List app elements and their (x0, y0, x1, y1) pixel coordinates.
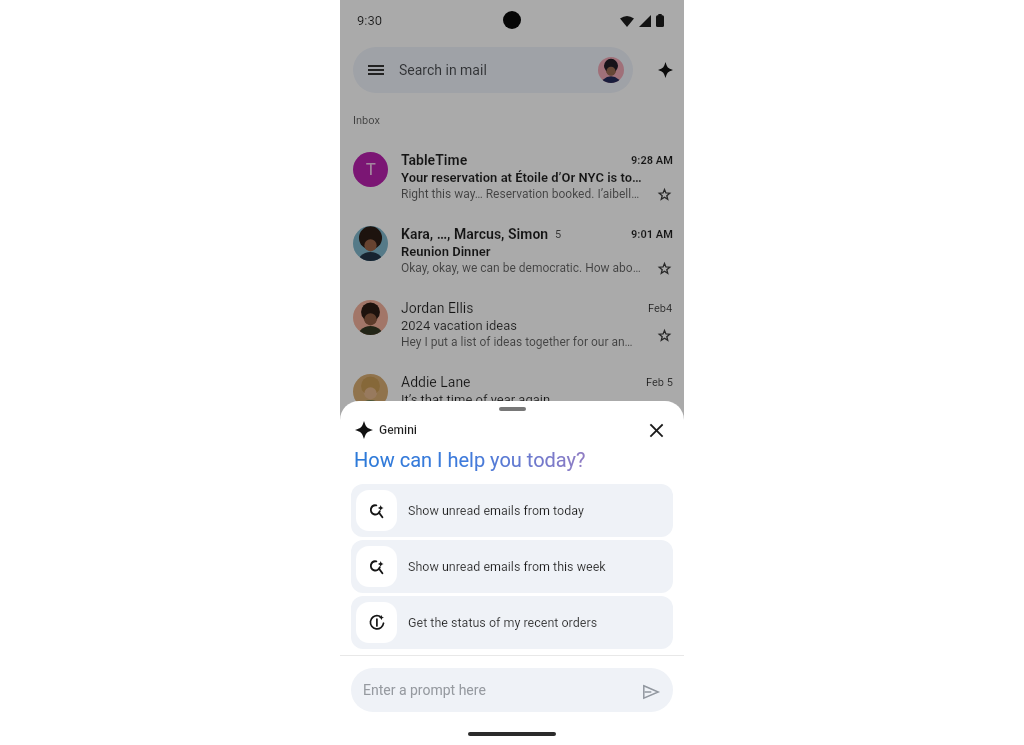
button[interactable]: Jordan Ellis (340, 300, 684, 374)
staticText: Okay, okay, we can be democratic. How ab… (401, 261, 656, 275)
button[interactable]: Enter a prompt here (351, 668, 673, 712)
staticText: TableTime (401, 152, 468, 168)
button[interactable]: T (340, 152, 684, 226)
button[interactable]: Star (659, 189, 670, 200)
staticText: Gemini (379, 423, 417, 437)
staticText: Your reservation at Étoile d’Or NYC is t… (401, 170, 642, 185)
button[interactable]: Send (643, 685, 659, 699)
staticText: 2024 vacation ideas (401, 318, 517, 333)
staticText: Get the status of my recent orders (408, 615, 598, 630)
staticText: Enter a prompt here (363, 682, 486, 698)
button[interactable]: Star (659, 263, 670, 274)
button[interactable]: Gemini (649, 54, 681, 86)
staticText: Show unread emails from this week (408, 559, 606, 574)
staticText: Feb 5 (646, 376, 673, 389)
staticText: Reunion Dinner (401, 244, 491, 259)
button[interactable]: Show unread emails from this week (351, 540, 673, 593)
staticText: Show unread emails from today (408, 503, 584, 518)
staticText (401, 409, 656, 423)
button[interactable]: Search in mail (353, 47, 633, 93)
staticText: Kara, …, Marcus, Simon (401, 226, 549, 242)
staticText: Hey I put a list of ideas together for o… (401, 335, 656, 349)
staticText: 9:28 AM (631, 154, 673, 167)
staticText: 9:01 AM (631, 228, 673, 241)
staticText: 5 (555, 228, 562, 241)
button[interactable]: Addie Lane (340, 374, 684, 448)
staticText: Search in mail (399, 62, 487, 78)
button[interactable]: Show unread emails from today (351, 484, 673, 537)
staticText: T (366, 160, 376, 179)
staticText: Jordan Ellis (401, 300, 474, 316)
button[interactable]: Close (644, 418, 668, 442)
staticText: 9:30 (357, 13, 383, 28)
staticText: Feb4 (648, 302, 673, 315)
button[interactable]: Get the status of my recent orders (351, 596, 673, 649)
staticText: Right this way… Reservation booked. I’ai… (401, 187, 656, 201)
button[interactable]: Star (659, 330, 670, 341)
staticText: Addie Lane (401, 374, 471, 390)
staticText: Inbox (353, 114, 380, 127)
button[interactable]: Kara, …, Marcus, Simon (340, 226, 684, 300)
staticText: How can I help you today? (354, 448, 586, 471)
staticText: It’s that time of year again (401, 392, 551, 407)
